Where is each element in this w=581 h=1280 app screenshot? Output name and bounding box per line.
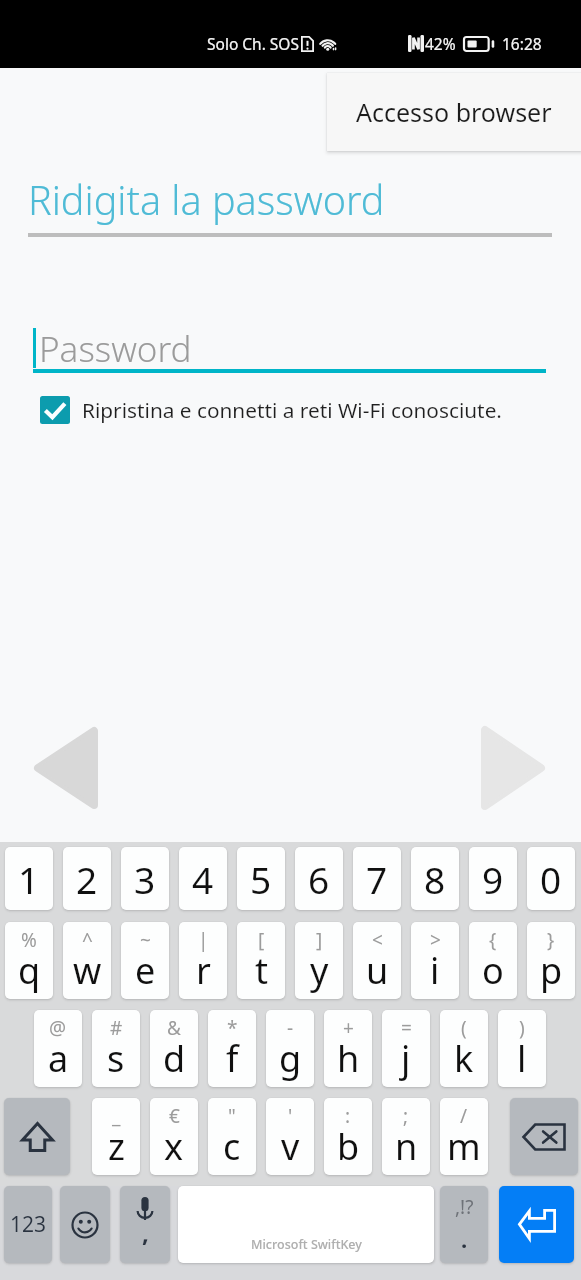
button[interactable]: @ (34, 1010, 82, 1087)
button[interactable]: Next (475, 722, 551, 814)
staticText: Solo Ch. SOS (207, 33, 299, 54)
button[interactable]: Shift (4, 1098, 70, 1175)
staticText: [ (258, 927, 265, 953)
button[interactable]: 7 (353, 847, 401, 910)
staticText: Accesso browser (356, 95, 552, 129)
button[interactable]: ~ (121, 922, 169, 999)
staticText: v (281, 1122, 300, 1171)
staticText: ~ (140, 927, 151, 953)
staticText: k (454, 1034, 474, 1083)
staticText: 6 (308, 854, 330, 904)
staticText: ] (316, 927, 323, 953)
button[interactable]: { (469, 922, 517, 999)
button[interactable]: ( (440, 1010, 488, 1087)
button[interactable]: ] (295, 922, 343, 999)
button[interactable]: Emoji (60, 1186, 110, 1263)
button[interactable]: * (208, 1010, 256, 1087)
staticText: = (401, 1015, 412, 1041)
staticText: a (48, 1034, 69, 1083)
staticText: . (461, 1224, 468, 1254)
button[interactable]: 6 (295, 847, 343, 910)
staticText: o (482, 946, 504, 995)
staticText: 8 (424, 854, 446, 904)
staticText: 1 (18, 854, 40, 904)
button[interactable]: ) (498, 1010, 546, 1087)
staticText: € (169, 1103, 180, 1129)
staticText: ^ (82, 927, 93, 953)
staticText: d (163, 1034, 186, 1083)
button[interactable]: ; (382, 1098, 430, 1175)
button[interactable]: Enter (499, 1186, 574, 1263)
staticText: 5 (250, 854, 272, 904)
staticText: y (310, 946, 329, 995)
button[interactable]: # (92, 1010, 140, 1087)
button[interactable]: " (208, 1098, 256, 1175)
button[interactable]: 9 (469, 847, 517, 910)
staticText: n (395, 1122, 418, 1171)
staticText: t (255, 946, 268, 995)
button[interactable]: 3 (121, 847, 169, 910)
staticText: i (430, 946, 440, 995)
staticText: < (372, 927, 383, 953)
button[interactable]: 5 (237, 847, 285, 910)
button[interactable]: Space (178, 1186, 434, 1263)
staticText: 3 (134, 854, 156, 904)
staticText: 7 (366, 854, 388, 904)
staticText: u (366, 946, 389, 995)
staticText: : (345, 1103, 351, 1129)
button[interactable]: 4 (179, 847, 227, 910)
button[interactable]: = (382, 1010, 430, 1087)
staticText: / (460, 1103, 468, 1129)
staticText: 42% (425, 33, 456, 54)
button[interactable]: 8 (411, 847, 459, 910)
staticText: 0 (540, 854, 562, 904)
staticText: c (223, 1122, 241, 1171)
staticText: 16:28 (502, 33, 542, 54)
button[interactable]: < (353, 922, 401, 999)
button[interactable]: & (150, 1010, 198, 1087)
staticText: e (135, 946, 156, 995)
button[interactable]: > (411, 922, 459, 999)
button[interactable]: ,!? (440, 1186, 488, 1263)
staticText: > (430, 927, 441, 953)
button[interactable]: _ (92, 1098, 140, 1175)
button[interactable]: Accesso browser (327, 73, 581, 151)
button[interactable]: Backspace (510, 1098, 578, 1175)
button[interactable]: € (150, 1098, 198, 1175)
staticText: f (226, 1034, 239, 1083)
button[interactable]: 1 (5, 847, 53, 910)
button[interactable]: / (440, 1098, 488, 1175)
staticText: ' (288, 1103, 293, 1129)
staticText: 4 (192, 854, 214, 904)
staticText: & (167, 1015, 181, 1041)
button[interactable]: Voice input (120, 1186, 170, 1263)
button[interactable]: % (5, 922, 53, 999)
staticText: Ripristina e connetti a reti Wi-Fi conos… (82, 396, 502, 424)
button[interactable]: 0 (527, 847, 575, 910)
staticText: ( (461, 1015, 467, 1041)
staticText: ,!? (455, 1194, 474, 1220)
staticText: 9 (482, 854, 504, 904)
button[interactable]: 2 (63, 847, 111, 910)
staticText: ; (403, 1103, 409, 1129)
staticText: @ (49, 1015, 67, 1041)
button[interactable]: ^ (63, 922, 111, 999)
staticText: Password (39, 325, 192, 371)
button[interactable]: ' (266, 1098, 314, 1175)
staticText: ) (519, 1015, 525, 1041)
staticText: Microsoft SwiftKey (251, 1236, 362, 1253)
staticText: _ (112, 1103, 121, 1129)
staticText: j (401, 1034, 411, 1083)
button[interactable]: Ripristina e connetti a reti Wi-Fi conos… (40, 395, 502, 425)
staticText: - (287, 1015, 294, 1041)
button[interactable]: + (324, 1010, 372, 1087)
button[interactable]: : (324, 1098, 372, 1175)
button[interactable]: [ (237, 922, 285, 999)
button[interactable]: 123 (4, 1186, 52, 1263)
button[interactable]: } (527, 922, 575, 999)
staticText: g (279, 1034, 302, 1083)
button[interactable]: Previous (28, 722, 104, 814)
staticText: + (343, 1015, 354, 1041)
button[interactable]: | (179, 922, 227, 999)
button[interactable]: - (266, 1010, 314, 1087)
